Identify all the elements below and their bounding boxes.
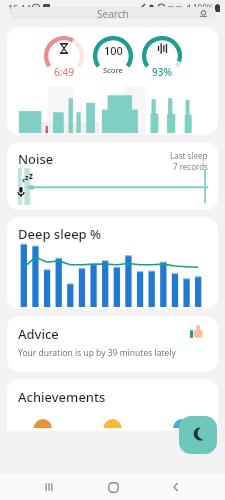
button[interactable]: Start sleep tracking [179, 416, 217, 454]
staticText: Noise [18, 150, 54, 168]
staticText: Your duration is up by 39 minutes lately [18, 347, 176, 359]
staticText: 93% [152, 65, 172, 79]
staticText: Advice [18, 325, 59, 343]
button[interactable]: Deep sleep % [7, 217, 218, 309]
staticText: Score [103, 65, 123, 75]
staticText: 6:49 [54, 65, 74, 79]
staticText: 100 [104, 43, 123, 58]
button[interactable]: Search [9, 7, 216, 19]
staticText: 7 records [173, 161, 208, 172]
button[interactable]: Advice [7, 316, 218, 372]
other: Voice search [199, 9, 208, 18]
staticText: z [22, 176, 25, 184]
staticText: 100% [193, 2, 214, 13]
button[interactable]: 6:49 [7, 27, 218, 135]
staticText: Last sleep [170, 150, 208, 161]
staticText: 15:14 [8, 2, 32, 14]
staticText: z [29, 170, 33, 181]
other: Microphone recording [17, 187, 25, 197]
button[interactable]: Home [98, 474, 128, 500]
staticText: Search [97, 7, 129, 19]
button[interactable]: Noise [7, 142, 218, 210]
button[interactable]: Back [161, 474, 191, 500]
button[interactable]: Recents [34, 474, 64, 500]
button[interactable]: Achievements [7, 379, 218, 431]
staticText: z [25, 173, 29, 183]
staticText: Deep sleep % [18, 225, 102, 243]
staticText: Achievements [18, 388, 106, 406]
